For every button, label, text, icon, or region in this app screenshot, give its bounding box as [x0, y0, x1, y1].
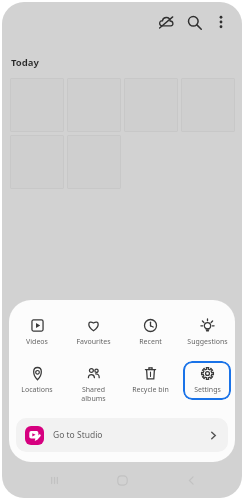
- button[interactable]: Settings: [183, 361, 231, 400]
- button[interactable]: Recycle bin: [126, 361, 174, 400]
- staticText: Favourites: [76, 337, 111, 347]
- staticText: Suggestions: [187, 337, 228, 347]
- staticText: Shared albums: [81, 385, 106, 403]
- button[interactable]: Go to Studio: [16, 418, 228, 452]
- button[interactable]: More options: [208, 9, 234, 35]
- staticText: Settings: [194, 385, 221, 395]
- button[interactable]: Search: [180, 8, 208, 36]
- staticText: Today: [11, 56, 39, 69]
- staticText: Videos: [26, 337, 48, 347]
- button[interactable]: Shared albums: [69, 361, 117, 408]
- button[interactable]: Cloud off: [152, 8, 180, 36]
- button[interactable]: Locations: [13, 361, 61, 400]
- button[interactable]: Suggestions: [183, 313, 231, 352]
- staticText: Go to Studio: [53, 429, 103, 441]
- button[interactable]: Favourites: [69, 313, 117, 352]
- button[interactable]: Recent: [126, 313, 174, 352]
- staticText: Recent: [139, 337, 162, 347]
- staticText: Recycle bin: [132, 385, 169, 395]
- button[interactable]: Videos: [13, 313, 61, 352]
- staticText: Locations: [21, 385, 53, 395]
